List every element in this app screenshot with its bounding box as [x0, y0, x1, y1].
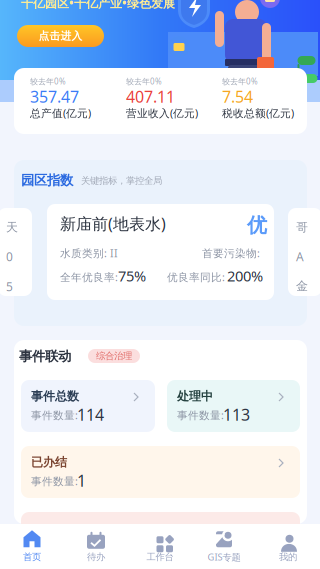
- button[interactable]: GIS专题: [192, 524, 256, 569]
- staticText: 新庙前(地表水): [60, 213, 166, 234]
- staticText: 较去年0%: [222, 76, 258, 87]
- staticText: 哥: [296, 220, 308, 235]
- staticText: 已办结: [31, 455, 67, 470]
- button[interactable]: 工作台: [128, 524, 192, 569]
- staticText: 营业收入(亿元): [126, 106, 198, 120]
- staticText: 天: [6, 220, 18, 235]
- staticText: 优: [247, 213, 267, 238]
- staticText: 首要污染物:: [202, 246, 260, 260]
- staticText: 114: [77, 404, 104, 425]
- staticText: 1: [77, 470, 86, 491]
- staticText: 处理中: [177, 389, 213, 404]
- staticText: 首页: [23, 551, 41, 563]
- staticText: 0: [6, 249, 13, 265]
- staticText: GIS专题: [207, 551, 240, 563]
- staticText: 357.47: [30, 86, 79, 107]
- button[interactable]: 我的: [256, 524, 320, 569]
- staticText: 点击进入: [38, 29, 82, 42]
- staticText: 7.54: [222, 86, 253, 107]
- staticText: 较去年0%: [126, 76, 162, 87]
- button[interactable]: 处理中: [167, 380, 300, 432]
- staticText: 关键指标，掌控全局: [81, 175, 162, 186]
- staticText: 事件联动: [19, 348, 71, 364]
- button[interactable]: 事件总数: [21, 380, 155, 432]
- staticText: 待办: [87, 551, 105, 563]
- button[interactable]: 首页: [0, 524, 64, 569]
- staticText: 税收总额(亿元): [222, 106, 294, 120]
- staticText: 综合治理: [96, 350, 132, 362]
- staticText: 事件总数: [31, 389, 79, 404]
- button[interactable]: 已办结: [21, 446, 300, 498]
- staticText: 事件数量:: [31, 474, 78, 488]
- staticText: 我的: [279, 551, 297, 563]
- staticText: 工作台: [146, 551, 173, 563]
- button[interactable]: 点击进入: [17, 25, 104, 47]
- staticText: 总产值(亿元): [30, 106, 91, 120]
- staticText: 水质类别: II: [60, 246, 118, 260]
- staticText: 千亿园区•千亿产业•绿色发展: [21, 0, 175, 11]
- button[interactable]: 待办: [64, 524, 128, 569]
- staticText: 园区指数: [21, 172, 73, 188]
- staticText: 较去年0%: [30, 76, 66, 87]
- staticText: 事件数量:: [31, 408, 78, 422]
- staticText: 200%: [227, 266, 263, 285]
- staticText: 金: [296, 279, 308, 293]
- staticText: 407.11: [126, 86, 175, 107]
- staticText: 事件数量:: [177, 408, 224, 422]
- staticText: 5: [6, 279, 13, 295]
- staticText: 113: [223, 404, 250, 425]
- staticText: A: [296, 249, 304, 265]
- staticText: 优良率同比:: [167, 270, 225, 284]
- staticText: 75%: [118, 266, 146, 285]
- staticText: 全年优良率:: [60, 270, 118, 284]
